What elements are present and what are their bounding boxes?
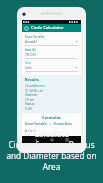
staticText: Know Variable = Known Area	[25, 122, 72, 126]
button[interactable]: Unit	[25, 60, 78, 73]
button[interactable]: Back	[34, 138, 38, 142]
button[interactable]: Recents	[65, 138, 69, 142]
other: Expand	[75, 66, 78, 69]
staticText: 10 cm	[25, 97, 35, 101]
staticText: Circle Calculator	[31, 25, 64, 31]
staticText: Calculate Circumference, Radius and Diam…	[6, 128, 97, 172]
staticText: Area(A)	[25, 39, 75, 44]
other: Expand	[75, 40, 78, 43]
staticText: 5.00	[25, 106, 32, 110]
other: App icon	[24, 26, 29, 31]
staticText: Circumference	[25, 84, 45, 88]
staticText: Radius	[25, 102, 35, 106]
staticText: Know Variable	[25, 35, 45, 39]
staticText: 31.4156 cm	[25, 88, 43, 92]
staticText: inch	[25, 65, 75, 70]
button[interactable]: Know Variable	[25, 34, 78, 47]
staticText: Diameter	[25, 93, 38, 97]
staticText: A = π r²	[25, 129, 36, 133]
button[interactable]: Area (A)	[25, 47, 78, 60]
staticText: Unit	[25, 61, 31, 65]
button[interactable]: Home	[50, 138, 54, 142]
staticText: Area (A)	[25, 48, 36, 52]
staticText: Results	[25, 77, 40, 82]
button[interactable]: App icon	[22, 24, 81, 32]
button[interactable]: Formulas	[42, 115, 61, 120]
staticText: 78.539	[25, 52, 78, 57]
